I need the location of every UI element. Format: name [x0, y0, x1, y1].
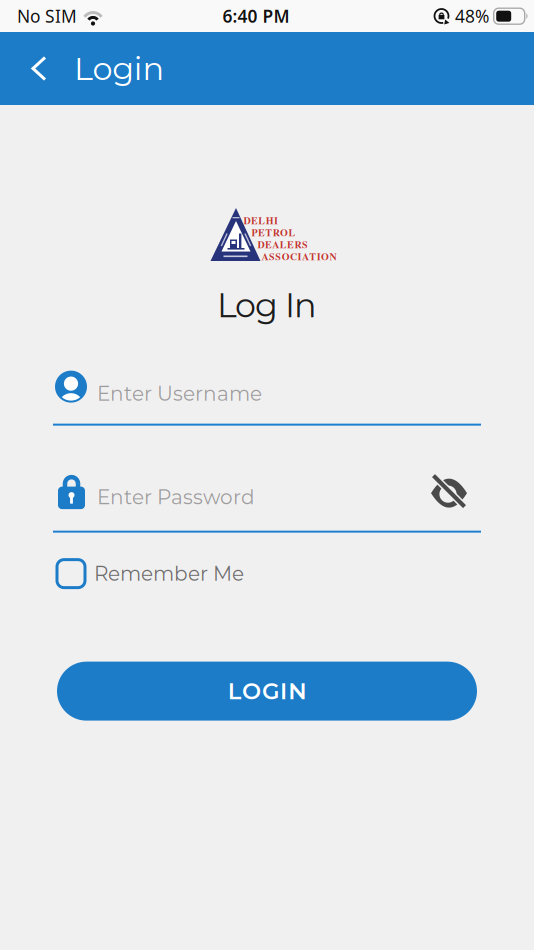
button[interactable]: LOGIN: [57, 662, 477, 721]
staticText: ASSOCIATION: [261, 249, 336, 264]
staticText: Remember Me: [94, 561, 244, 586]
staticText: Enter Password: [97, 485, 255, 509]
staticText: Login: [74, 49, 164, 88]
button[interactable]: Show password: [431, 473, 481, 509]
button[interactable]: Enter Username: [0, 371, 534, 426]
staticText: DEALERS: [257, 237, 308, 252]
staticText: PETROL: [251, 225, 295, 240]
staticText: No SIM: [17, 4, 77, 27]
staticText: 48%: [455, 4, 489, 27]
button[interactable]: Enter Password: [0, 473, 534, 533]
staticText: DELHI: [243, 213, 278, 228]
button[interactable]: Remember Me: [0, 560, 534, 588]
staticText: LOGIN: [228, 677, 306, 705]
staticText: Enter Username: [97, 381, 262, 406]
staticText: 6:40 PM: [222, 4, 289, 27]
button[interactable]: Back: [0, 55, 48, 81]
staticText: Log In: [217, 285, 317, 326]
